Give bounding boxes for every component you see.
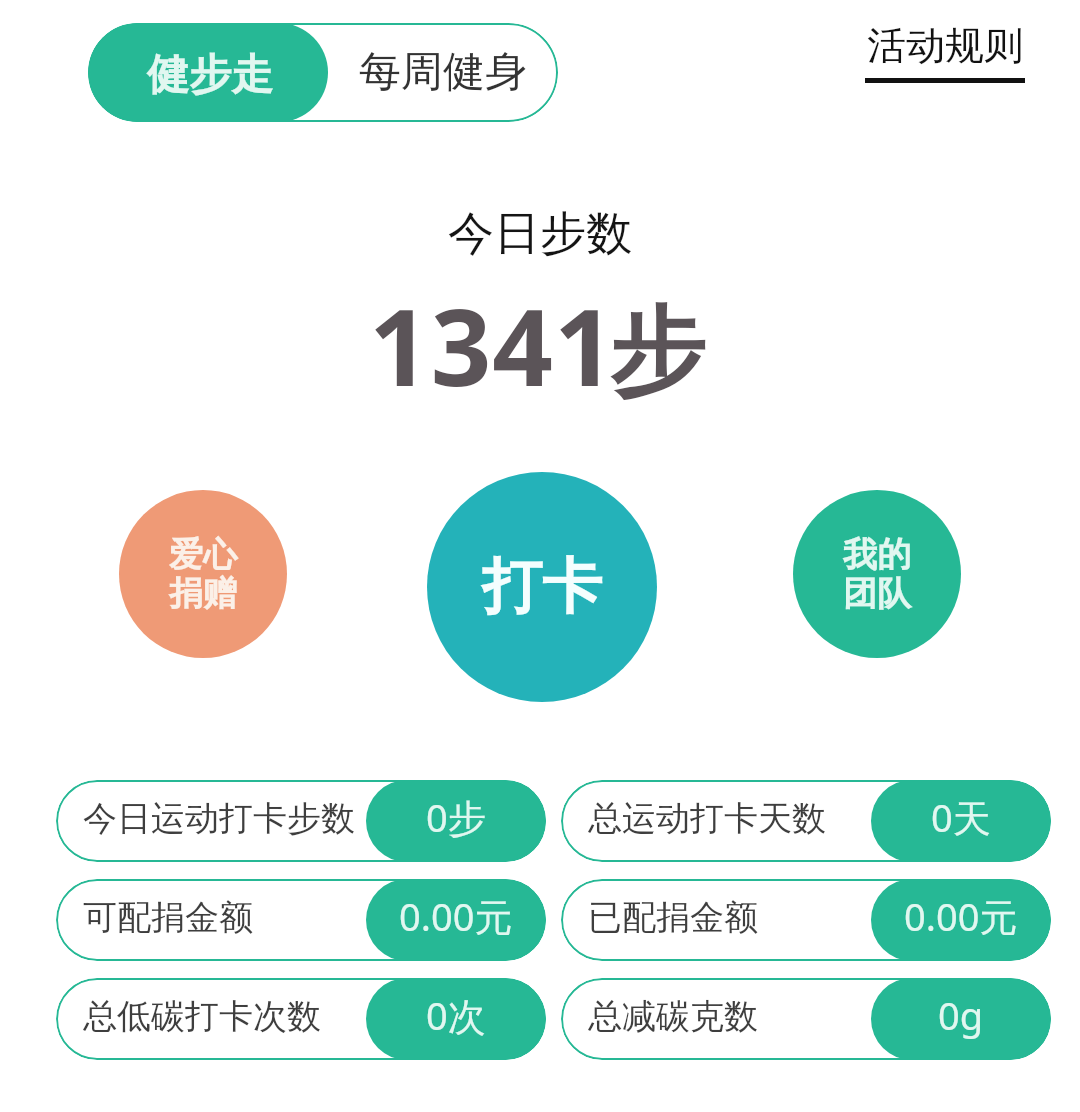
staticText: 0步 xyxy=(426,791,486,843)
staticText: 总减碳克数 xyxy=(588,995,758,1038)
staticText: 步 xyxy=(609,293,705,414)
staticText: 0次 xyxy=(426,989,486,1041)
staticText: 总运动打卡天数 xyxy=(588,797,826,840)
button[interactable]: 0次 xyxy=(56,978,546,1060)
button[interactable]: 打卡 xyxy=(427,472,657,702)
staticText: 活动规则 xyxy=(867,21,1023,70)
button[interactable]: 0天 xyxy=(561,780,1051,862)
button[interactable]: 0步 xyxy=(56,780,546,862)
staticText: 健步走 xyxy=(147,49,273,102)
staticText: 我的 团队 xyxy=(843,533,911,615)
button[interactable]: 每周健身 xyxy=(328,23,558,122)
button[interactable]: 0.00元 xyxy=(561,879,1051,961)
staticText: 1341 xyxy=(369,273,616,417)
staticText: 已配捐金额 xyxy=(588,896,758,939)
button[interactable]: 我的团队 xyxy=(793,490,961,658)
staticText: 每周健身 xyxy=(359,46,527,99)
button[interactable]: 0.00元 xyxy=(56,879,546,961)
button[interactable]: 活动规则 xyxy=(865,21,1025,83)
staticText: 打卡 xyxy=(482,549,602,625)
staticText: 今日运动打卡步数 xyxy=(83,797,355,840)
staticText: 0.00元 xyxy=(399,890,513,942)
staticText: 总低碳打卡次数 xyxy=(83,995,321,1038)
staticText: 爱心 捐赠 xyxy=(169,533,237,615)
staticText: 今日步数 xyxy=(448,205,632,263)
staticText: 0天 xyxy=(931,791,991,843)
button[interactable]: 0g xyxy=(561,978,1051,1060)
button[interactable]: 爱心捐赠 xyxy=(119,490,287,658)
staticText: 0.00元 xyxy=(904,890,1018,942)
staticText: 可配捐金额 xyxy=(83,896,253,939)
staticText: 0g xyxy=(938,989,984,1041)
button[interactable]: 健步走 xyxy=(88,23,328,122)
